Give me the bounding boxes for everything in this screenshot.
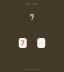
staticText: Recents [25,1,38,6]
button[interactable]: Calendar [19,38,27,48]
button[interactable]: App [37,38,45,48]
staticText: 7 [21,39,25,47]
